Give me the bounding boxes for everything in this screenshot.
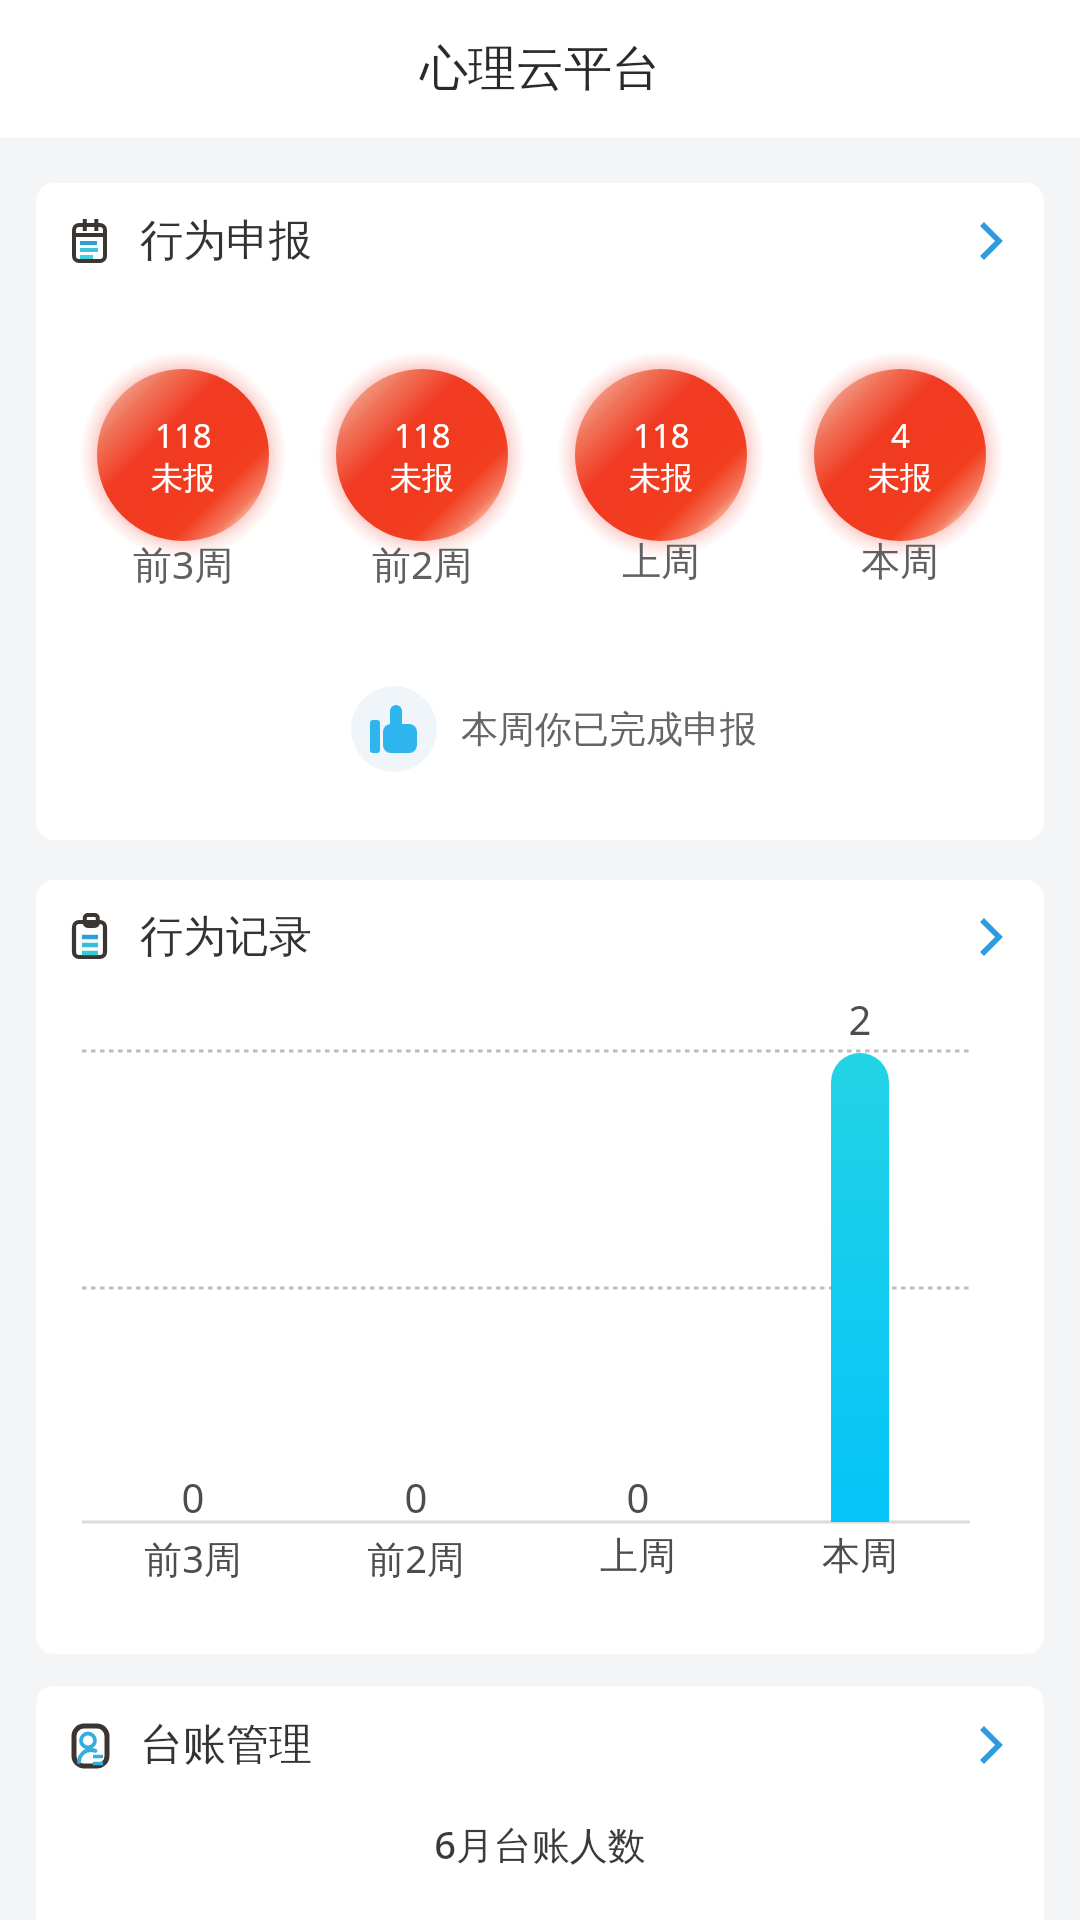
button[interactable]: 台账管理 — [36, 1705, 1044, 1785]
staticText: 上周 — [548, 1532, 728, 1580]
staticText: 未报 — [390, 458, 454, 498]
staticText: 上周 — [622, 537, 700, 586]
button[interactable]: 本周你已完成申报 — [351, 686, 757, 772]
staticText: 本周你已完成申报 — [461, 706, 757, 753]
button[interactable]: 行为记录 — [36, 897, 1044, 977]
staticText: 前3周 — [133, 537, 234, 590]
staticText: 本周 — [770, 1532, 950, 1580]
staticText: 118 — [394, 413, 451, 458]
staticText: 6月台账人数 — [36, 1818, 1044, 1870]
staticText: 0 — [602, 1470, 674, 1524]
staticText: 本周 — [861, 537, 939, 586]
staticText: 前2周 — [326, 1532, 506, 1584]
staticText: 行为记录 — [140, 910, 312, 964]
button[interactable]: 行为申报 — [36, 201, 1044, 281]
staticText: 心理云平台 — [420, 39, 660, 99]
staticText: 2 — [824, 992, 896, 1046]
staticText: 118 — [155, 413, 212, 458]
staticText: 4 — [891, 413, 910, 458]
staticText: 前3周 — [103, 1532, 283, 1584]
staticText: 118 — [633, 413, 690, 458]
staticText: 行为申报 — [140, 214, 312, 268]
staticText: 0 — [157, 1470, 229, 1524]
staticText: 未报 — [868, 458, 932, 498]
staticText: 前2周 — [372, 537, 473, 590]
staticText: 未报 — [151, 458, 215, 498]
staticText: 0 — [380, 1470, 452, 1524]
staticText: 未报 — [629, 458, 693, 498]
staticText: 台账管理 — [140, 1718, 312, 1772]
